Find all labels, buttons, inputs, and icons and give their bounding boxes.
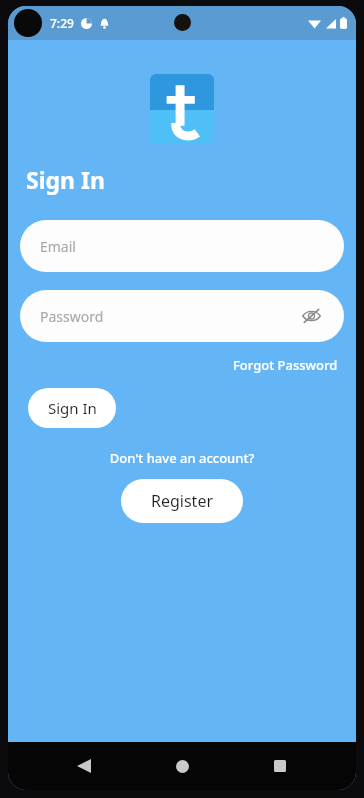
button[interactable]: Back bbox=[62, 744, 106, 788]
button[interactable]: Forgot Password bbox=[227, 354, 344, 376]
button[interactable]: Home bbox=[160, 744, 204, 788]
staticText: Email bbox=[40, 237, 76, 256]
button[interactable]: Password bbox=[20, 290, 344, 342]
button[interactable]: Email bbox=[20, 220, 344, 272]
staticText: Sign In bbox=[48, 398, 97, 418]
button[interactable]: Sign In bbox=[28, 388, 116, 428]
staticText: Don't have an account? bbox=[20, 449, 344, 467]
staticText: Sign In bbox=[26, 164, 105, 195]
button[interactable]: Toggle password visibility bbox=[298, 303, 324, 329]
button[interactable]: Register bbox=[121, 479, 243, 523]
button[interactable]: Recent apps bbox=[258, 744, 302, 788]
staticText: Forgot Password bbox=[233, 356, 338, 374]
staticText: Register bbox=[151, 490, 214, 512]
staticText: 7:29 bbox=[50, 15, 74, 31]
staticText: Password bbox=[40, 307, 104, 326]
